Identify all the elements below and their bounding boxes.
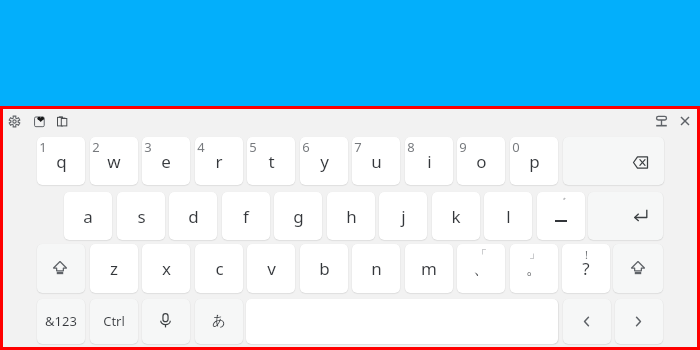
button[interactable]: v xyxy=(247,244,295,293)
button[interactable]: s xyxy=(117,192,165,240)
staticText: t xyxy=(268,150,275,173)
staticText: h xyxy=(346,205,357,228)
button[interactable]: 7 xyxy=(352,137,400,185)
staticText: 8 xyxy=(407,138,415,156)
staticText: 9 xyxy=(459,138,467,156)
staticText: z xyxy=(110,257,118,280)
button[interactable]: Close keyboard xyxy=(675,111,695,131)
staticText: ! xyxy=(585,247,588,262)
button[interactable]: 」 xyxy=(510,244,558,293)
button[interactable]: 8 xyxy=(405,137,453,185)
button[interactable]: Shift xyxy=(37,244,85,293)
staticText: 6 xyxy=(302,138,310,156)
staticText: b xyxy=(319,257,330,280)
button[interactable]: b xyxy=(300,244,348,293)
staticText: 、 xyxy=(473,258,490,279)
staticText: g xyxy=(293,205,304,228)
staticText: d xyxy=(188,205,199,228)
staticText: x xyxy=(162,257,171,280)
button[interactable]: k xyxy=(432,192,480,240)
staticText: o xyxy=(476,150,487,173)
button[interactable]: ゛ xyxy=(537,192,585,240)
staticText: 「 xyxy=(476,247,487,261)
staticText: j xyxy=(401,205,406,228)
staticText: 7 xyxy=(354,138,362,156)
button[interactable]: Symbols xyxy=(37,299,85,344)
button[interactable]: Ctrl xyxy=(90,299,138,344)
staticText: &123 xyxy=(45,312,77,330)
staticText: 。 xyxy=(526,258,543,279)
button[interactable]: Enter xyxy=(588,192,663,240)
staticText: ? xyxy=(582,257,590,280)
button[interactable]: g xyxy=(274,192,322,240)
staticText: n xyxy=(371,257,382,280)
staticText: u xyxy=(371,150,382,173)
button[interactable]: n xyxy=(352,244,400,293)
staticText: m xyxy=(421,257,437,280)
button[interactable]: m xyxy=(405,244,453,293)
button[interactable]: 4 xyxy=(195,137,243,185)
button[interactable]: f xyxy=(222,192,270,240)
button[interactable]: Next candidate xyxy=(615,299,663,344)
button[interactable]: l xyxy=(484,192,532,240)
staticText: p xyxy=(529,150,540,173)
button[interactable]: h xyxy=(327,192,375,240)
button[interactable]: z xyxy=(90,244,138,293)
staticText: 5 xyxy=(249,138,257,156)
button[interactable]: Settings xyxy=(4,111,24,131)
staticText: Ctrl xyxy=(103,312,125,330)
button[interactable]: d xyxy=(169,192,217,240)
button[interactable]: j xyxy=(379,192,427,240)
button[interactable]: 0 xyxy=(510,137,558,185)
button[interactable]: Stickers xyxy=(29,111,49,131)
button[interactable]: Clipboard xyxy=(52,111,72,131)
button[interactable]: Japanese input xyxy=(195,299,243,344)
staticText: y xyxy=(320,150,329,173)
button[interactable]: x xyxy=(142,244,190,293)
button[interactable]: Backspace xyxy=(563,137,664,185)
staticText: k xyxy=(451,205,461,228)
button[interactable]: 1 xyxy=(37,137,85,185)
staticText: w xyxy=(107,150,121,173)
staticText: l xyxy=(506,205,511,228)
staticText: ゛ xyxy=(555,195,567,209)
staticText: s xyxy=(137,205,146,228)
button[interactable]: Shift xyxy=(613,244,663,293)
button[interactable]: 「 xyxy=(457,244,505,293)
button[interactable]: Previous candidate xyxy=(563,299,611,344)
staticText: f xyxy=(243,205,249,228)
staticText: r xyxy=(215,150,223,173)
button[interactable]: a xyxy=(64,192,112,240)
staticText: a xyxy=(83,205,93,228)
button[interactable]: 6 xyxy=(300,137,348,185)
staticText: 4 xyxy=(197,138,205,156)
staticText: 2 xyxy=(92,138,100,156)
staticText: q xyxy=(56,150,67,173)
button[interactable]: Voice input xyxy=(142,299,190,344)
button[interactable]: ! xyxy=(562,244,610,293)
staticText: c xyxy=(215,257,224,280)
button[interactable]: 2 xyxy=(90,137,138,185)
staticText: v xyxy=(267,257,276,280)
button[interactable]: c xyxy=(195,244,243,293)
button[interactable]: 3 xyxy=(142,137,190,185)
staticText: 3 xyxy=(144,138,152,156)
button[interactable]: Dock keyboard xyxy=(651,111,671,131)
button[interactable]: 9 xyxy=(457,137,505,185)
staticText: e xyxy=(161,150,171,173)
staticText: あ xyxy=(212,312,226,329)
button[interactable]: 5 xyxy=(247,137,295,185)
staticText: 0 xyxy=(512,138,520,156)
staticText: 1 xyxy=(39,138,47,156)
staticText: 」 xyxy=(529,247,540,261)
staticText: i xyxy=(427,150,432,173)
